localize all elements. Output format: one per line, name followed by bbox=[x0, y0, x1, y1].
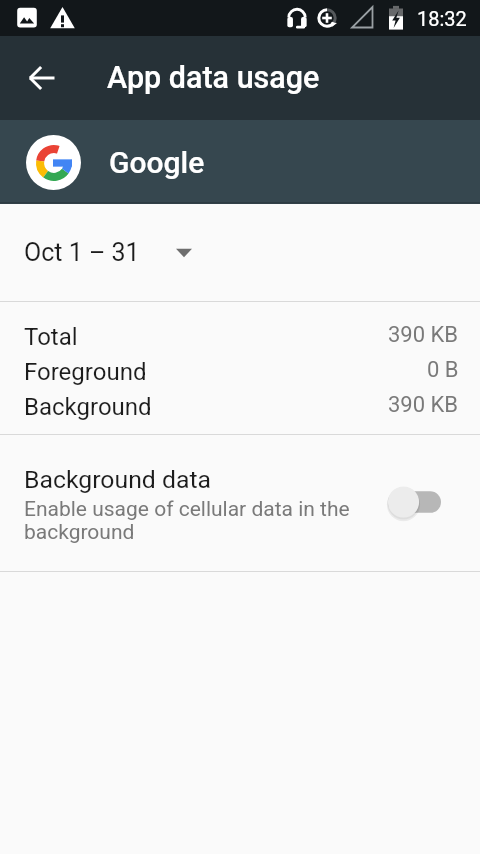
staticText: Google bbox=[109, 145, 205, 180]
staticText: Total bbox=[24, 323, 78, 351]
staticText: 18:32 bbox=[417, 7, 467, 30]
button[interactable]: Google bbox=[0, 120, 480, 204]
button[interactable]: Background data toggle bbox=[380, 473, 456, 533]
staticText: 390 KB bbox=[388, 322, 459, 348]
staticText: Background bbox=[24, 393, 152, 421]
staticText: Oct 1 – 31 bbox=[24, 238, 140, 267]
staticText: 390 KB bbox=[388, 392, 459, 418]
button[interactable]: Navigate up bbox=[18, 54, 66, 102]
staticText: Background data bbox=[24, 465, 212, 494]
staticText: Foreground bbox=[24, 358, 147, 386]
button[interactable]: Oct 1 – 31 bbox=[0, 204, 480, 301]
staticText: App data usage bbox=[107, 60, 320, 96]
button[interactable]: Background data bbox=[0, 435, 480, 571]
staticText: 0 B bbox=[427, 357, 459, 383]
staticText: Enable usage of cellular data in the bac… bbox=[24, 497, 354, 544]
